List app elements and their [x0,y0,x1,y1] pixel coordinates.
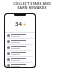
button[interactable] [5,45,35,50]
staticText: 34 [15,20,22,28]
button[interactable] [5,33,35,38]
staticText: EARN REWARDS [17,5,47,10]
button[interactable] [5,51,35,56]
staticText: COLLECT STARS AND [13,1,51,6]
button[interactable] [5,57,35,62]
button[interactable] [5,39,35,44]
button[interactable] [5,63,35,67]
